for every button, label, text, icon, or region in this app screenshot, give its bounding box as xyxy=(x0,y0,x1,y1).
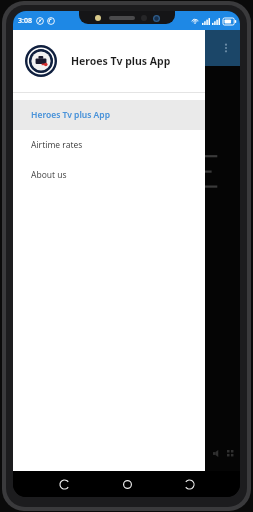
button[interactable]: Home xyxy=(115,472,139,496)
staticText: Airtime rates xyxy=(31,139,83,151)
button[interactable]: Airtime rates xyxy=(13,130,205,160)
staticText: Heroes Tv plus App xyxy=(71,54,171,68)
button[interactable]: Recent apps xyxy=(177,472,201,496)
button[interactable]: Back xyxy=(52,472,76,496)
staticText: Heroes Tv plus App xyxy=(31,109,110,121)
staticText: 3:08 xyxy=(18,16,32,26)
button[interactable]: More options xyxy=(217,39,235,57)
staticText: About us xyxy=(31,169,67,181)
button[interactable]: About us xyxy=(13,160,205,190)
button[interactable]: Heroes Tv plus App xyxy=(13,100,205,130)
button[interactable]: Heroes Tv plus App xyxy=(13,30,205,92)
